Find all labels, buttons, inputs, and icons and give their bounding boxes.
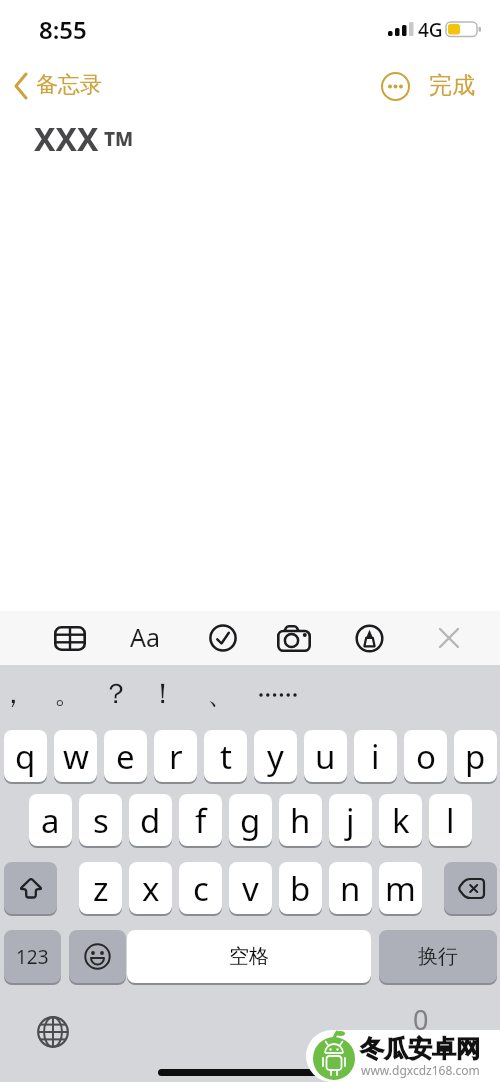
staticText: 、 — [207, 676, 235, 711]
button[interactable]: ！ — [140, 670, 186, 716]
button[interactable]: Aa — [122, 617, 168, 657]
staticText: t — [220, 734, 232, 779]
button[interactable]: a — [29, 794, 72, 846]
staticText: 冬瓜安卓网 — [360, 1034, 480, 1064]
staticText: m — [385, 866, 416, 911]
button[interactable] — [430, 621, 468, 655]
button[interactable] — [4, 862, 57, 914]
button[interactable]: i — [354, 730, 397, 782]
button[interactable]: d — [129, 794, 172, 846]
button[interactable] — [48, 621, 92, 655]
button[interactable]: n — [329, 862, 372, 914]
staticText: 123 — [16, 944, 49, 970]
staticText: c — [193, 866, 209, 911]
button[interactable]: z — [79, 862, 122, 914]
staticText: ， — [0, 676, 27, 711]
staticText: y — [267, 734, 284, 779]
staticText: 空格 — [229, 944, 269, 969]
button[interactable]: m — [379, 862, 422, 914]
button[interactable]: e — [104, 730, 147, 782]
button[interactable]: h — [279, 794, 322, 846]
button[interactable]: 备忘录 — [8, 68, 118, 104]
staticText: o — [416, 734, 436, 779]
button[interactable]: 空格 — [127, 930, 371, 983]
button[interactable] — [255, 670, 301, 716]
staticText: ？ — [102, 676, 130, 711]
button[interactable]: r — [154, 730, 197, 782]
button[interactable]: b — [279, 862, 322, 914]
staticText: ！ — [149, 676, 177, 711]
staticText: TM — [104, 126, 134, 152]
button[interactable] — [350, 621, 388, 655]
button[interactable]: p — [454, 730, 497, 782]
staticText: 换行 — [418, 944, 458, 969]
button[interactable]: 换行 — [379, 930, 497, 983]
button[interactable]: f — [179, 794, 222, 846]
button[interactable]: q — [4, 730, 47, 782]
staticText: p — [465, 734, 486, 779]
staticText: z — [93, 866, 109, 911]
staticText: 完成 — [429, 71, 475, 100]
button[interactable] — [202, 621, 244, 655]
staticText: k — [392, 798, 410, 843]
staticText: e — [116, 734, 135, 779]
staticText: q — [15, 734, 36, 779]
button[interactable]: 123 — [4, 930, 61, 983]
staticText: n — [340, 866, 361, 911]
button[interactable] — [444, 862, 497, 914]
staticText: i — [371, 734, 380, 779]
staticText: f — [195, 798, 207, 843]
button[interactable]: 完成 — [429, 71, 475, 100]
staticText: u — [315, 734, 336, 779]
staticText: j — [346, 798, 355, 843]
button[interactable]: ， — [0, 670, 36, 716]
staticText: Aa — [130, 620, 161, 654]
button[interactable]: w — [54, 730, 97, 782]
staticText: s — [93, 798, 109, 843]
button[interactable]: 。 — [45, 670, 91, 716]
button[interactable] — [69, 930, 126, 983]
staticText: w — [63, 734, 89, 779]
staticText: www.dgxcdz168.com — [361, 1062, 480, 1078]
staticText: l — [446, 798, 455, 843]
staticText: g — [240, 798, 261, 843]
button[interactable]: ？ — [93, 670, 139, 716]
staticText: 8:55 — [39, 13, 87, 46]
button[interactable]: s — [79, 794, 122, 846]
staticText: 。 — [54, 676, 82, 711]
button[interactable] — [272, 621, 316, 655]
button[interactable] — [28, 1010, 78, 1054]
button[interactable]: j — [329, 794, 372, 846]
button[interactable]: t — [204, 730, 247, 782]
button[interactable]: l — [429, 794, 472, 846]
staticText: x — [142, 866, 160, 911]
staticText: 备忘录 — [36, 71, 102, 99]
button[interactable]: o — [404, 730, 447, 782]
staticText: 4G — [418, 17, 443, 43]
staticText: XXX — [34, 117, 99, 161]
button[interactable]: u — [304, 730, 347, 782]
staticText: v — [242, 866, 259, 911]
button[interactable]: g — [229, 794, 272, 846]
staticText: 0 — [413, 1001, 429, 1038]
button[interactable]: 、 — [198, 670, 244, 716]
staticText: a — [41, 798, 60, 843]
staticText: b — [290, 866, 311, 911]
staticText: r — [169, 734, 183, 779]
button[interactable]: k — [379, 794, 422, 846]
button[interactable]: c — [179, 862, 222, 914]
staticText: d — [140, 798, 161, 843]
staticText: h — [290, 798, 311, 843]
button[interactable]: y — [254, 730, 297, 782]
button[interactable]: x — [129, 862, 172, 914]
button[interactable] — [380, 71, 411, 102]
button[interactable]: v — [229, 862, 272, 914]
